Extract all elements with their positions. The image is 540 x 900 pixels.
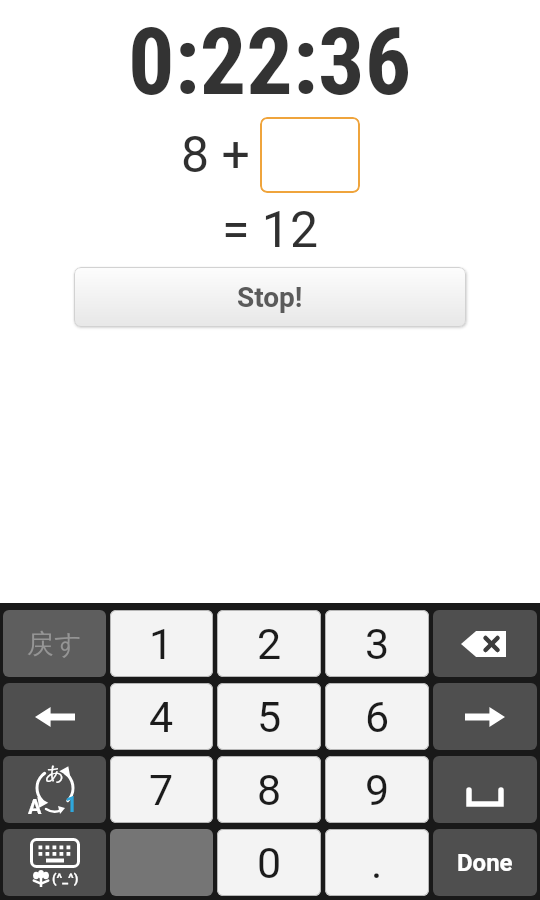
- button[interactable]: .: [325, 829, 429, 896]
- button[interactable]: Done: [433, 829, 537, 896]
- button[interactable]: Stop!: [74, 267, 466, 327]
- staticText: 戻す: [27, 627, 82, 661]
- button[interactable]: 7: [110, 756, 213, 823]
- staticText: 5: [257, 692, 282, 742]
- staticText: 7: [149, 765, 174, 815]
- staticText: Done: [457, 849, 513, 877]
- staticText: 1: [65, 792, 78, 818]
- staticText: 2: [257, 619, 282, 669]
- button[interactable]: 2: [217, 610, 321, 677]
- staticText: 8: [257, 765, 282, 815]
- staticText: 1: [149, 619, 174, 669]
- button[interactable]: [433, 756, 537, 823]
- staticText: .: [371, 838, 383, 888]
- staticText: 0:22:36: [128, 9, 412, 117]
- button[interactable]: (^_^): [3, 829, 106, 896]
- staticText: あ: [45, 762, 65, 786]
- button[interactable]: [433, 683, 537, 750]
- staticText: (^_^): [52, 871, 79, 886]
- button[interactable]: 5: [217, 683, 321, 750]
- staticText: Stop!: [237, 281, 303, 314]
- staticText: A: [28, 795, 42, 818]
- button[interactable]: [110, 829, 213, 896]
- button[interactable]: [433, 610, 537, 677]
- button[interactable]: [3, 683, 106, 750]
- button[interactable]: 8: [217, 756, 321, 823]
- button[interactable]: 4: [110, 683, 213, 750]
- button[interactable]: 9: [325, 756, 429, 823]
- button[interactable]: [260, 117, 360, 193]
- staticText: 8 +: [181, 126, 250, 185]
- staticText: 6: [365, 692, 390, 742]
- staticText: 0: [257, 838, 282, 888]
- button[interactable]: 6: [325, 683, 429, 750]
- button[interactable]: あ: [3, 756, 106, 823]
- staticText: 3: [365, 619, 390, 669]
- button[interactable]: 戻す: [3, 610, 106, 677]
- button[interactable]: 1: [110, 610, 213, 677]
- staticText: 4: [149, 692, 174, 742]
- staticText: = 12: [222, 201, 319, 260]
- button[interactable]: 3: [325, 610, 429, 677]
- button[interactable]: 0: [217, 829, 321, 896]
- staticText: 9: [365, 765, 390, 815]
